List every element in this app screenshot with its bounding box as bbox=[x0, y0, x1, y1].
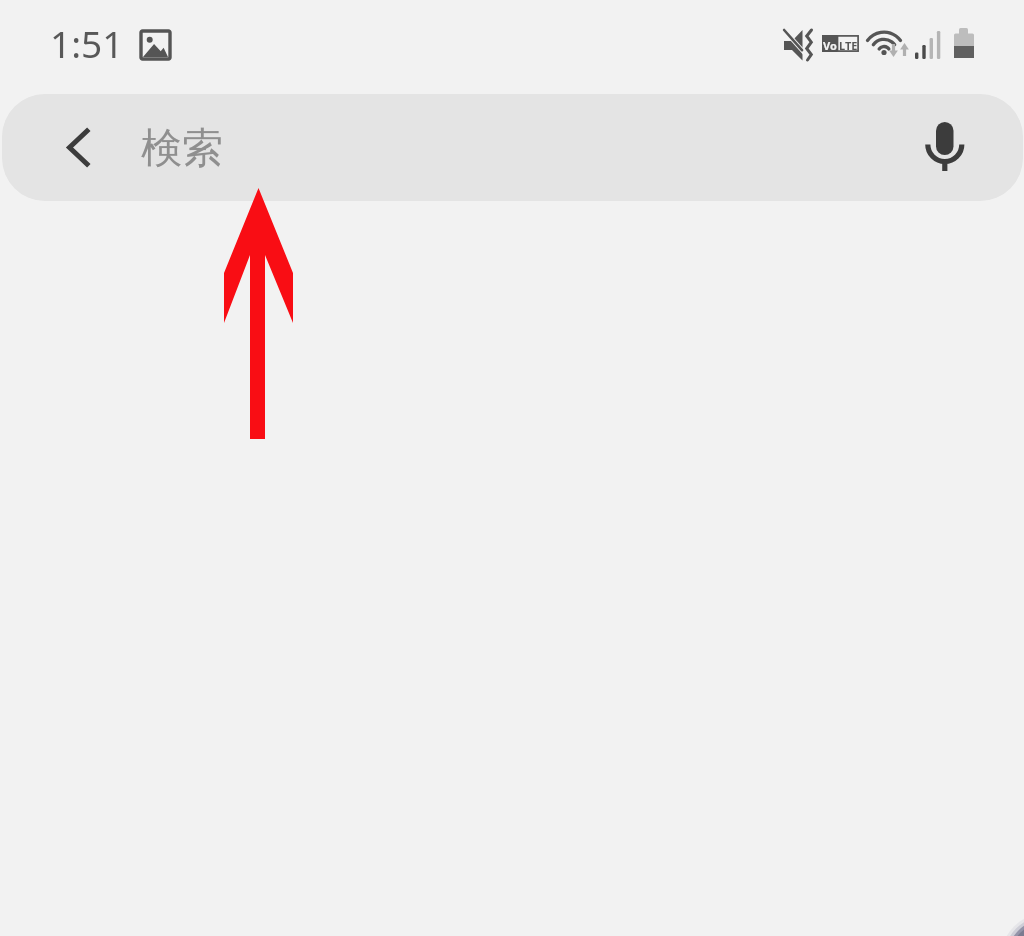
staticText: 1:51 bbox=[50, 18, 124, 68]
button[interactable] bbox=[2, 94, 1023, 201]
staticText: Vo bbox=[823, 38, 837, 53]
staticText: LTE bbox=[839, 38, 858, 53]
button[interactable]: Back bbox=[47, 117, 109, 179]
button[interactable]: Voice search bbox=[915, 110, 977, 172]
staticText: 検索 bbox=[141, 123, 223, 175]
